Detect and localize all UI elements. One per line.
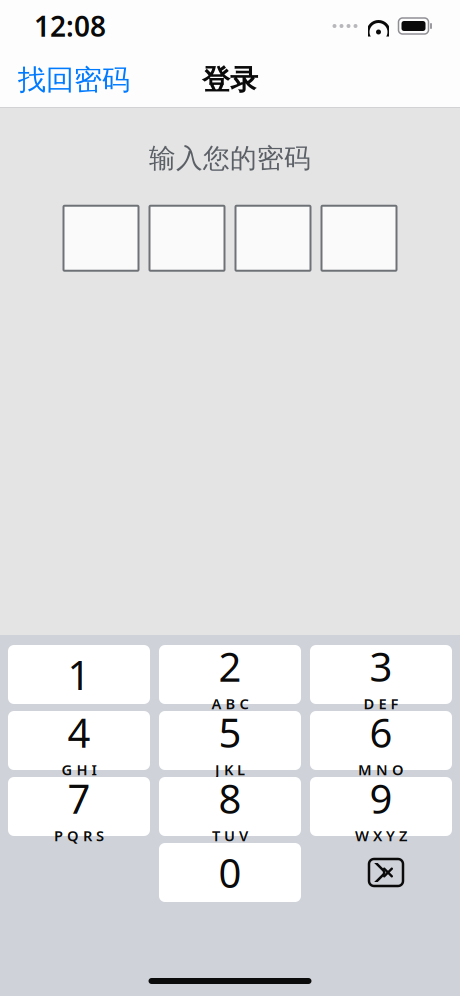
staticText: 登录: [202, 63, 258, 97]
staticText: 0: [218, 846, 241, 899]
staticText: 8: [218, 772, 241, 825]
staticText: 6: [369, 706, 392, 759]
staticText: 1: [67, 648, 90, 701]
staticText: A B C: [211, 694, 248, 713]
staticText: W X Y Z: [355, 826, 407, 845]
button[interactable]: 4: [8, 711, 150, 770]
button[interactable]: 3: [310, 645, 452, 704]
staticText: D E F: [363, 694, 398, 713]
button[interactable]: 0: [159, 843, 301, 902]
button[interactable]: 8: [159, 777, 301, 836]
button[interactable]: 9: [310, 777, 452, 836]
staticText: 2: [218, 640, 241, 693]
staticText: 4: [67, 706, 90, 759]
button[interactable]: Delete: [310, 843, 452, 902]
button[interactable]: 2: [159, 645, 301, 704]
button[interactable]: 7: [8, 777, 150, 836]
staticText: 3: [369, 640, 392, 693]
staticText: 7: [67, 772, 90, 825]
staticText: J K L: [215, 760, 245, 779]
staticText: 输入您的密码: [149, 142, 311, 175]
staticText: M N O: [358, 760, 404, 779]
staticText: 12:08: [34, 7, 106, 45]
staticText: 5: [218, 706, 241, 759]
staticText: 找回密码: [18, 63, 130, 97]
button[interactable]: 1: [8, 645, 150, 704]
staticText: G H I: [61, 760, 96, 779]
staticText: 9: [369, 772, 392, 825]
button[interactable]: 5: [159, 711, 301, 770]
staticText: T U V: [212, 826, 248, 845]
button[interactable]: 6: [310, 711, 452, 770]
staticText: P Q R S: [54, 826, 104, 845]
button[interactable]: 找回密码: [0, 53, 148, 107]
